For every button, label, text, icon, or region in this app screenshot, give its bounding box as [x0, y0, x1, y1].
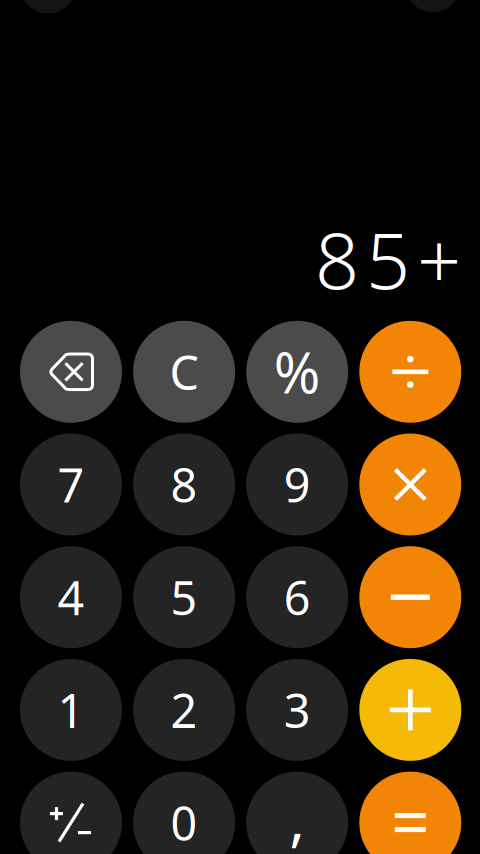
- staticText: C: [170, 341, 199, 403]
- button[interactable]: 6: [246, 546, 348, 648]
- button[interactable]: Equals: [359, 772, 461, 854]
- button[interactable]: Divide: [359, 321, 461, 423]
- button[interactable]: 4: [20, 546, 122, 648]
- button[interactable]: Subtract: [359, 546, 461, 648]
- button[interactable]: Plus minus: [20, 772, 122, 854]
- staticText: 9: [284, 453, 311, 515]
- staticText: 1: [57, 679, 84, 741]
- button[interactable]: 5: [133, 546, 235, 648]
- staticText: 5: [171, 566, 198, 628]
- button[interactable]: ,: [246, 772, 348, 854]
- button[interactable]: Add: [359, 659, 461, 761]
- button[interactable]: 7: [20, 433, 122, 535]
- staticText: ,: [289, 779, 305, 854]
- button[interactable]: Delete: [20, 321, 122, 423]
- button[interactable]: 1: [20, 659, 122, 761]
- staticText: 0: [171, 792, 198, 854]
- staticText: 7: [57, 453, 84, 515]
- button[interactable]: History: [19, 0, 76, 13]
- button[interactable]: Menu: [404, 0, 461, 12]
- staticText: 3: [284, 679, 311, 741]
- button[interactable]: 9: [246, 433, 348, 535]
- staticText: 85+: [315, 208, 461, 310]
- button[interactable]: %: [246, 321, 348, 423]
- button[interactable]: Multiply: [359, 433, 461, 535]
- staticText: 2: [171, 679, 198, 741]
- button[interactable]: 2: [133, 659, 235, 761]
- staticText: 8: [171, 453, 198, 515]
- staticText: %: [274, 335, 321, 409]
- button[interactable]: 3: [246, 659, 348, 761]
- staticText: 4: [57, 566, 84, 628]
- button[interactable]: 0: [133, 772, 235, 854]
- button[interactable]: 8: [133, 433, 235, 535]
- button[interactable]: C: [133, 321, 235, 423]
- staticText: 6: [284, 566, 311, 628]
